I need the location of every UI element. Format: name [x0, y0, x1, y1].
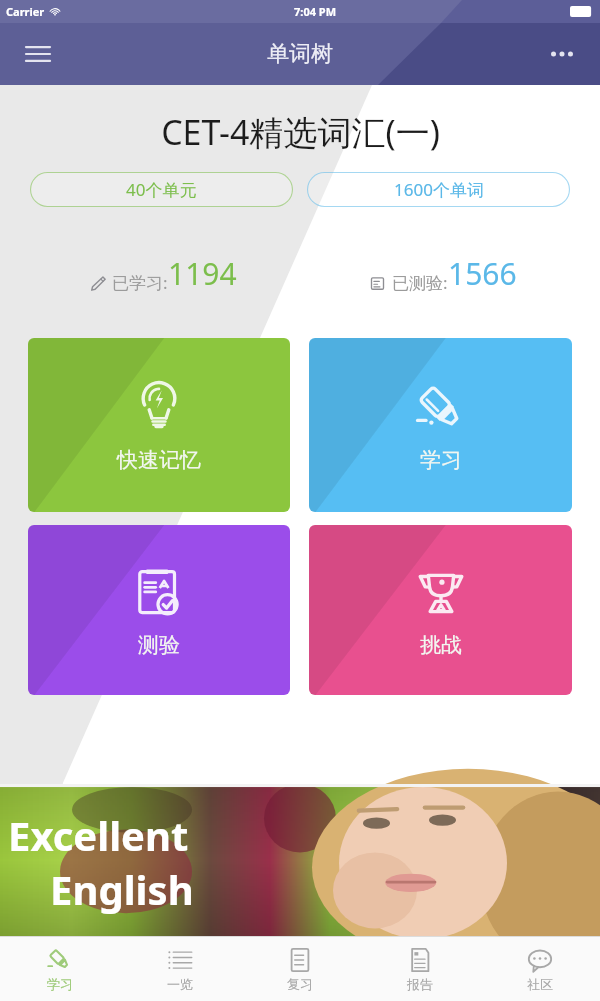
staticText: 报告 [407, 976, 433, 992]
button[interactable]: 社区 [480, 937, 600, 1001]
button[interactable]: 一览 [120, 937, 240, 1001]
staticText: 社区 [527, 976, 553, 992]
staticText: CET-4精选词汇(一) [161, 109, 440, 155]
staticText: 学习 [47, 976, 73, 992]
button[interactable]: More options [540, 32, 584, 76]
staticText: 一览 [167, 976, 193, 992]
button[interactable]: Menu [16, 32, 60, 76]
staticText: 测验 [138, 632, 180, 658]
staticText: 复习 [287, 976, 313, 992]
staticText: 已学习: [112, 271, 168, 294]
staticText: 已测验: [392, 271, 448, 294]
button[interactable]: 学习 [0, 937, 120, 1001]
staticText: 40个单元 [126, 178, 197, 201]
staticText: 单词树 [267, 40, 333, 68]
staticText: English [50, 862, 194, 916]
button[interactable]: 挑战 [309, 525, 572, 695]
staticText: 快速记忆 [117, 447, 201, 473]
button[interactable]: 复习 [240, 937, 360, 1001]
button[interactable]: 40个单元 [30, 172, 293, 207]
button[interactable]: 学习 [309, 338, 572, 512]
staticText: 学习 [420, 447, 462, 473]
staticText: Excellent [8, 808, 189, 862]
button[interactable]: 测验 [28, 525, 290, 695]
button[interactable]: Excellent English banner [0, 784, 600, 936]
staticText: 1600个单词 [394, 178, 484, 201]
staticText: 1566 [448, 253, 517, 294]
staticText: 1194 [168, 253, 237, 294]
button[interactable]: 快速记忆 [28, 338, 290, 512]
staticText: 7:04 PM [294, 4, 337, 19]
button[interactable]: 报告 [360, 937, 480, 1001]
staticText: 挑战 [420, 632, 462, 658]
staticText: Carrier [6, 4, 45, 19]
button[interactable]: 1600个单词 [307, 172, 570, 207]
